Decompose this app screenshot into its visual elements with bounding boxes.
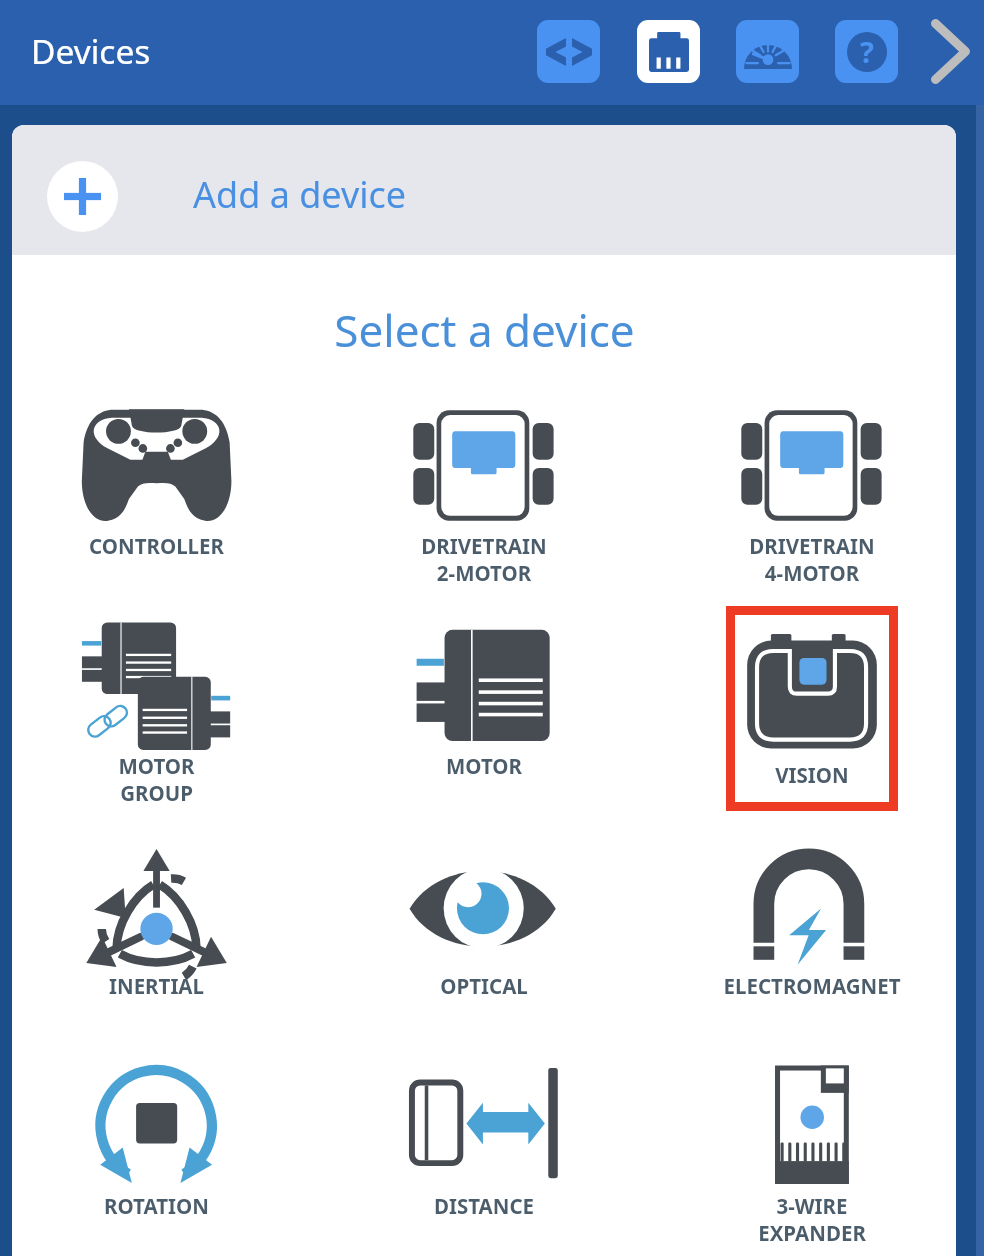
staticText: OPTICAL (320, 972, 648, 1000)
button[interactable]: MOTOR GROUP (12, 606, 320, 826)
staticText: Devices (31, 28, 151, 74)
button[interactable]: INERTIAL (12, 826, 320, 1046)
staticText: VISION (735, 761, 889, 789)
staticText: DRIVETRAIN 2-MOTOR (320, 532, 648, 587)
staticText: Add a device (193, 170, 407, 219)
button[interactable]: Add a device (12, 125, 956, 255)
button[interactable]: DRIVETRAIN 4-MOTOR (648, 386, 956, 606)
button[interactable]: Devices (637, 20, 700, 83)
button[interactable]: MOTOR (320, 606, 648, 826)
button[interactable]: VISION (735, 615, 889, 802)
staticText: DRIVETRAIN 4-MOTOR (648, 532, 956, 587)
staticText: CONTROLLER (12, 532, 320, 560)
button[interactable]: OPTICAL (320, 826, 648, 1046)
staticText: 3-WIRE EXPANDER (648, 1192, 956, 1247)
staticText: DISTANCE (320, 1192, 648, 1220)
button[interactable]: DRIVETRAIN 2-MOTOR (320, 386, 648, 606)
button[interactable]: ELECTROMAGNET (648, 826, 956, 1046)
staticText: ELECTROMAGNET (648, 972, 956, 1000)
button[interactable]: ROTATION (12, 1046, 320, 1256)
staticText: INERTIAL (12, 972, 320, 1000)
staticText: ? (860, 32, 874, 71)
button[interactable]: Code (537, 20, 600, 83)
button[interactable]: 3-WIRE EXPANDER (648, 1046, 956, 1256)
button[interactable]: Help (835, 20, 898, 83)
button[interactable]: Next (924, 13, 976, 89)
button[interactable]: Dashboard (736, 20, 799, 83)
staticText: MOTOR GROUP (12, 752, 320, 807)
staticText: MOTOR (320, 752, 648, 780)
button[interactable]: DISTANCE (320, 1046, 648, 1256)
staticText: ROTATION (12, 1192, 320, 1220)
button[interactable]: CONTROLLER (12, 386, 320, 606)
staticText: Select a device (334, 300, 635, 360)
